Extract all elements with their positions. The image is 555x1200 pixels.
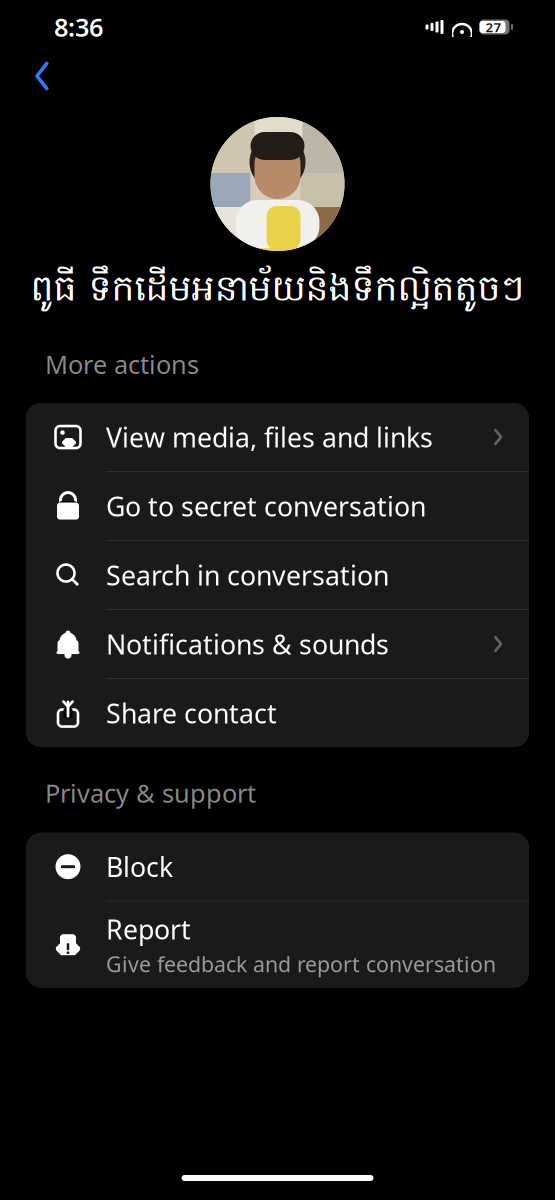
staticText: Notifications & sounds [106, 626, 389, 662]
staticText: Share contact [106, 695, 277, 731]
button[interactable]: Search in conversation [26, 541, 529, 609]
staticText: More actions [45, 347, 199, 381]
staticText: Give feedback and report conversation [106, 950, 496, 978]
button[interactable]: Notifications & sounds [26, 610, 529, 678]
staticText: 8:36 [54, 10, 103, 44]
staticText: 27 [485, 18, 501, 36]
staticText: Report [106, 911, 191, 947]
button[interactable]: Back [16, 54, 68, 98]
button[interactable]: View media, files and links [26, 403, 529, 471]
button[interactable]: Report [26, 902, 529, 988]
staticText: Search in conversation [106, 557, 389, 593]
button[interactable]: Block [26, 833, 529, 901]
staticText: View media, files and links [106, 419, 433, 455]
staticText: Go to secret conversation [106, 488, 426, 524]
staticText: Block [106, 849, 173, 884]
staticText: Privacy & support [45, 776, 256, 810]
button[interactable]: Go to secret conversation [26, 472, 529, 540]
staticText: ពូធី ទឹកដើមអនាម័យនិងទឹកល្អិតតូចៗ [30, 266, 524, 317]
button[interactable]: Share contact [26, 679, 529, 747]
